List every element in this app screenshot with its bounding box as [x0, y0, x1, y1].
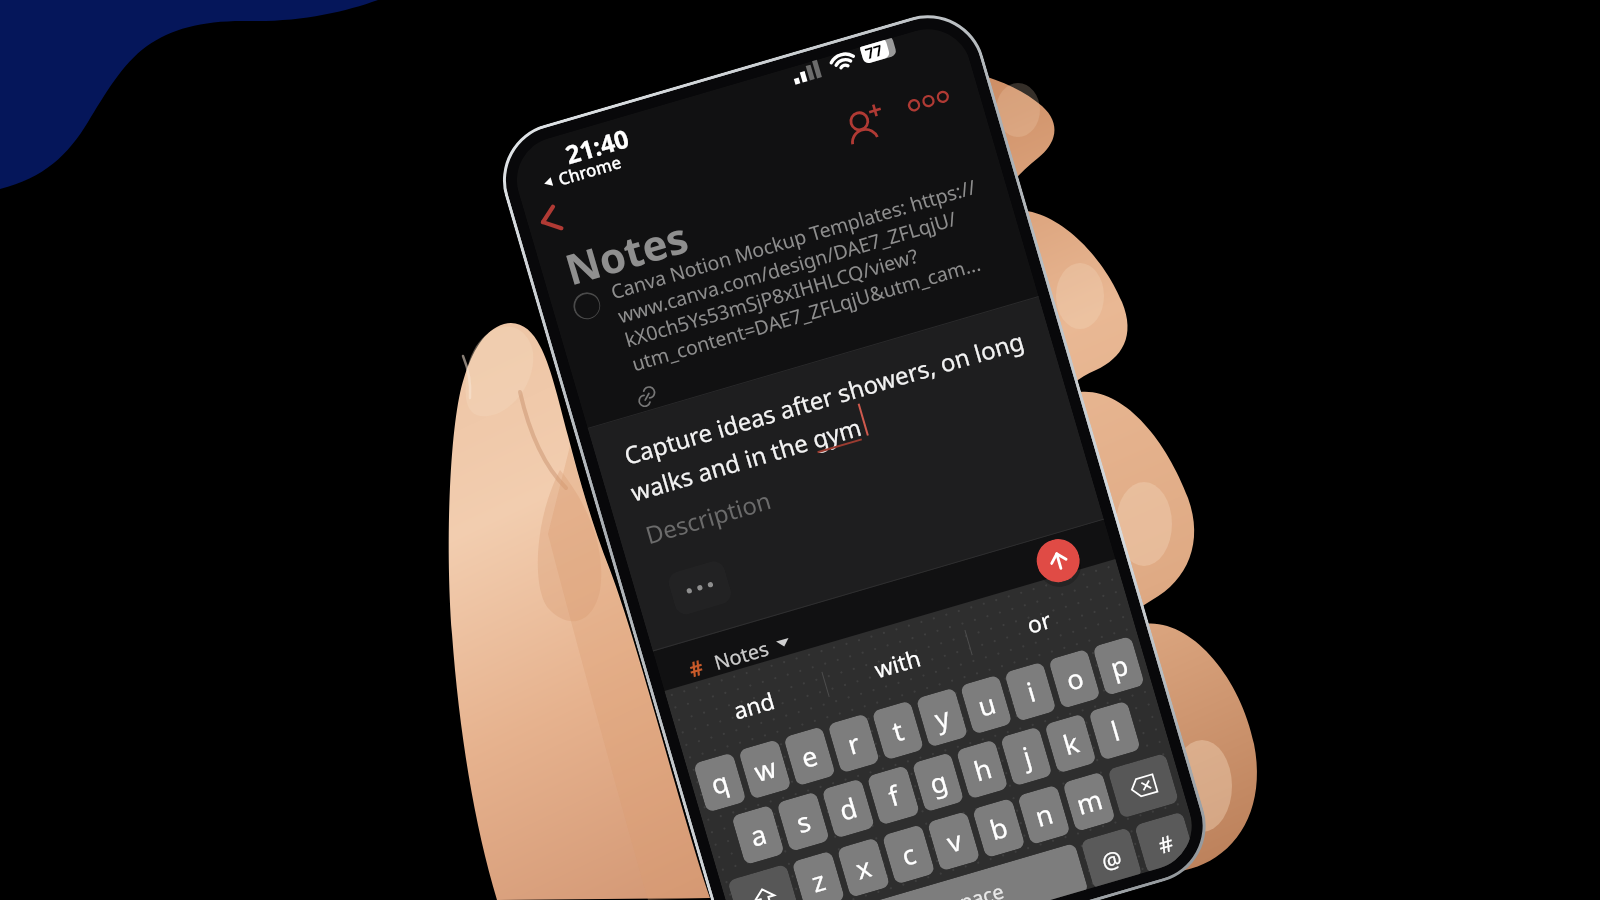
staticText: e: [797, 736, 822, 776]
staticText: t: [888, 711, 908, 750]
staticText: y: [930, 698, 954, 737]
button[interactable]: i: [1004, 662, 1057, 722]
button[interactable]: d: [821, 778, 875, 839]
button[interactable]: a: [731, 805, 785, 865]
button[interactable]: space: [864, 843, 1088, 900]
staticText: f: [884, 776, 904, 814]
staticText: k: [1059, 723, 1083, 763]
staticText: Capture ideas after showers, on long: [620, 324, 1028, 472]
button[interactable]: s: [776, 791, 830, 852]
staticText: 77: [863, 41, 886, 63]
staticText: d: [835, 788, 862, 829]
button[interactable]: q: [693, 752, 747, 813]
button[interactable]: h: [956, 739, 1008, 799]
button[interactable]: p: [1092, 636, 1145, 696]
button[interactable]: #: [1134, 811, 1195, 871]
button[interactable]: w: [738, 739, 792, 800]
button[interactable]: x: [837, 837, 890, 898]
button[interactable]: #: [685, 624, 794, 686]
staticText: j: [1018, 737, 1035, 775]
staticText: o: [1062, 658, 1088, 699]
staticText: l: [1107, 712, 1124, 749]
button[interactable]: g: [912, 752, 964, 812]
staticText: with: [870, 641, 924, 684]
staticText: Canva Notion Mockup Templates: https://w…: [608, 170, 1011, 377]
button[interactable]: or: [991, 592, 1087, 650]
staticText: h: [969, 749, 996, 789]
staticText: 21:40: [561, 120, 633, 171]
button[interactable]: c: [882, 824, 935, 885]
button[interactable]: Backspace: [1107, 753, 1179, 819]
button[interactable]: More options: [906, 85, 955, 116]
staticText: m: [1072, 780, 1107, 823]
button[interactable]: e: [783, 726, 836, 786]
button[interactable]: Mark as done: [570, 289, 603, 322]
staticText: z: [807, 861, 830, 900]
button[interactable]: b: [972, 798, 1026, 858]
staticText: w: [750, 748, 781, 790]
staticText: n: [1031, 795, 1057, 835]
staticText: u: [973, 684, 1000, 725]
button[interactable]: with: [849, 634, 945, 691]
button[interactable]: Send: [1031, 534, 1085, 587]
button[interactable]: u: [960, 674, 1012, 735]
button[interactable]: @: [1080, 827, 1142, 887]
staticText: or: [1023, 603, 1055, 640]
button[interactable]: f: [867, 765, 920, 826]
button[interactable]: o: [1048, 649, 1101, 709]
button[interactable]: k: [1044, 713, 1097, 774]
button[interactable]: Shift: [727, 864, 800, 900]
button[interactable]: n: [1017, 785, 1071, 845]
button[interactable]: l: [1088, 700, 1141, 761]
button[interactable]: More: [666, 558, 734, 617]
staticText: a: [746, 815, 771, 855]
staticText: Description: [641, 483, 775, 551]
staticText: Chrome: [555, 150, 624, 190]
staticText: #: [1154, 827, 1177, 860]
button[interactable]: r: [827, 713, 880, 773]
button[interactable]: y: [916, 687, 968, 748]
staticText: space: [947, 877, 1007, 900]
staticText: #: [686, 653, 707, 684]
staticText: s: [792, 802, 815, 841]
button[interactable]: v: [927, 811, 981, 871]
staticText: @: [1098, 842, 1125, 876]
staticText: Notes: [558, 207, 694, 297]
staticText: r: [843, 724, 865, 763]
staticText: and: [729, 684, 778, 725]
staticText: v: [942, 821, 966, 861]
button[interactable]: Back: [532, 201, 569, 238]
button[interactable]: j: [1000, 726, 1053, 786]
button[interactable]: m: [1062, 771, 1116, 832]
button[interactable]: Canva Notion Mockup Templates: https://w…: [608, 170, 1011, 377]
button[interactable]: z: [791, 851, 845, 900]
staticText: g: [925, 762, 952, 802]
staticText: Notes: [711, 634, 772, 676]
staticText: b: [985, 808, 1012, 848]
staticText: i: [1022, 673, 1039, 710]
staticText: x: [851, 848, 876, 887]
button[interactable]: and: [706, 675, 802, 733]
staticText: walks and in the gym: [627, 410, 865, 508]
button[interactable]: t: [871, 700, 924, 760]
staticText: q: [706, 762, 733, 803]
button[interactable]: Add person: [841, 101, 896, 155]
staticText: p: [1106, 646, 1132, 686]
staticText: c: [897, 835, 920, 874]
